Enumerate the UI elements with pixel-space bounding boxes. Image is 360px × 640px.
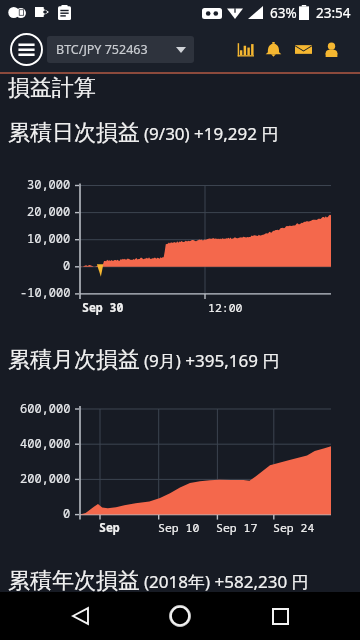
staticText: 累積日次損益 xyxy=(8,119,140,147)
staticText: 600,000 xyxy=(20,400,71,416)
staticText: (9月) +395,169 円 xyxy=(144,349,280,372)
staticText: 損益計算 xyxy=(8,74,96,102)
staticText: Sep 24 xyxy=(273,520,315,536)
button[interactable]: BTC/JPY 752463 xyxy=(47,36,194,63)
staticText: BTC/JPY 752463 xyxy=(56,41,148,58)
button[interactable]: Back xyxy=(56,592,104,640)
button[interactable]: Notifications xyxy=(256,32,290,66)
staticText: 累積年次損益 xyxy=(8,567,140,595)
button[interactable]: Menu xyxy=(8,31,44,67)
button[interactable]: Home xyxy=(156,592,204,640)
staticText: 400,000 xyxy=(20,435,71,451)
staticText: 0 xyxy=(63,257,71,273)
staticText: 10,000 xyxy=(27,230,71,246)
staticText: (2018年) +582,230 円 xyxy=(144,570,309,593)
button[interactable]: Messages xyxy=(286,32,320,66)
staticText: 200,000 xyxy=(20,470,71,486)
staticText: Sep 17 xyxy=(216,520,258,536)
staticText: Sep 10 xyxy=(158,520,200,536)
staticText: 累積月次損益 xyxy=(8,346,140,374)
staticText: 63% xyxy=(270,4,297,22)
staticText: Sep xyxy=(99,520,120,536)
staticText: 30,000 xyxy=(27,176,71,192)
staticText: 0 xyxy=(63,505,71,521)
button[interactable]: Recent apps xyxy=(256,592,304,640)
button[interactable]: Account xyxy=(314,32,348,66)
staticText: 12:00 xyxy=(208,300,243,316)
staticText: Sep 30 xyxy=(82,300,124,316)
staticText: 23:54 xyxy=(316,4,351,22)
staticText: -10,000 xyxy=(20,284,71,300)
staticText: 20,000 xyxy=(27,203,71,219)
staticText: (9/30) +19,292 円 xyxy=(144,122,279,145)
button[interactable]: Chart xyxy=(228,32,262,66)
